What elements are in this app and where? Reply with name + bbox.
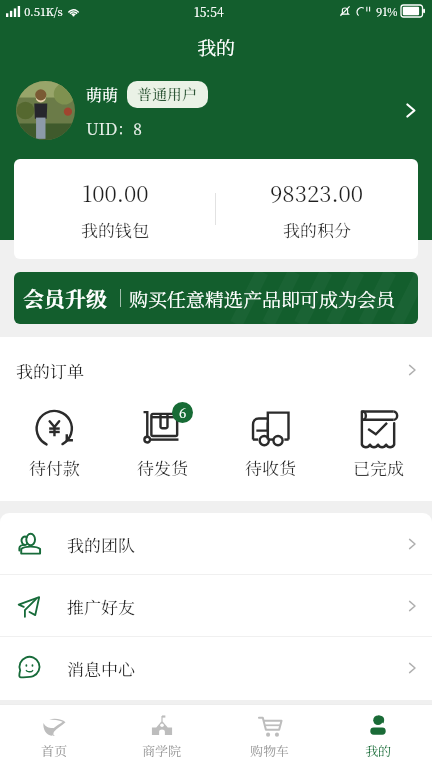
staticText: 100.00 xyxy=(82,177,149,209)
staticText: 购买任意精选产品即可成为会员 xyxy=(129,285,396,312)
staticText: UID：8 xyxy=(86,117,143,140)
staticText: 待付款 xyxy=(29,455,80,479)
other: 消息中心 xyxy=(407,663,417,673)
button[interactable]: 待付款 xyxy=(0,403,108,479)
staticText: 我的钱包 xyxy=(81,217,149,241)
staticText: 推广好友 xyxy=(67,594,135,618)
staticText: 我的团队 xyxy=(67,532,135,556)
other: 我的团队 xyxy=(407,539,417,549)
staticText: 我的积分 xyxy=(283,217,351,241)
button[interactable]: 我的团队 xyxy=(0,513,432,574)
staticText: 消息中心 xyxy=(67,656,135,680)
staticText: 我的 xyxy=(365,741,392,760)
button[interactable]: 商学院 xyxy=(108,705,216,768)
button[interactable]: 推广好友 xyxy=(0,575,432,636)
button[interactable]: 我的 xyxy=(324,705,432,768)
button[interactable]: 6 xyxy=(108,403,216,479)
button[interactable]: 萌萌 xyxy=(0,79,432,141)
staticText: 我的 xyxy=(197,33,236,60)
staticText: 购物车 xyxy=(250,741,290,760)
other: 推广好友 xyxy=(407,601,417,611)
staticText: 98323.00 xyxy=(270,177,364,209)
staticText: 普通用户 xyxy=(137,83,198,105)
staticText: 6 xyxy=(179,403,187,422)
staticText: 首页 xyxy=(41,741,68,760)
staticText: 商学院 xyxy=(142,741,182,760)
staticText: 待收货 xyxy=(245,455,296,479)
button[interactable]: 购物车 xyxy=(216,705,324,768)
staticText: 萌萌 xyxy=(86,83,119,106)
button[interactable]: 会员升级 xyxy=(14,272,418,324)
other: Account details xyxy=(404,104,417,117)
button[interactable]: 已完成 xyxy=(324,403,432,479)
button[interactable]: 100.00 xyxy=(14,159,215,259)
staticText: 91% xyxy=(376,3,398,19)
button[interactable]: 我的订单 xyxy=(0,337,432,403)
other: All orders xyxy=(407,365,417,375)
button[interactable]: 首页 xyxy=(0,705,108,768)
staticText: 我的订单 xyxy=(16,358,84,382)
staticText: 0.51K/s xyxy=(24,3,63,19)
staticText: 15:54 xyxy=(194,3,224,20)
staticText: 待发货 xyxy=(137,455,188,479)
button[interactable]: 待收货 xyxy=(216,403,324,479)
button[interactable]: 98323.00 xyxy=(216,159,418,259)
button[interactable]: 消息中心 xyxy=(0,637,432,698)
staticText: 已完成 xyxy=(353,455,404,479)
staticText: 会员升级 xyxy=(23,283,107,313)
